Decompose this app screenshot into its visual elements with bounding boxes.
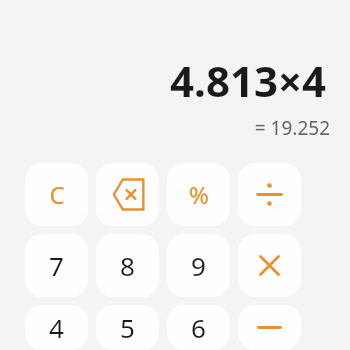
button[interactable]: 4 xyxy=(25,305,88,350)
staticText: = 19.252 xyxy=(0,115,330,141)
staticText: 5 xyxy=(120,310,135,345)
button[interactable]: Multiply xyxy=(238,234,301,297)
staticText: 4 xyxy=(49,310,64,345)
button[interactable]: 8 xyxy=(96,234,159,297)
button[interactable]: Backspace xyxy=(96,163,159,226)
staticText: 6 xyxy=(191,310,206,345)
button[interactable]: 9 xyxy=(167,234,230,297)
button[interactable]: % xyxy=(167,163,230,226)
button[interactable]: C xyxy=(25,163,88,226)
staticText: 4.813×4 xyxy=(0,52,326,109)
staticText: 7 xyxy=(49,248,64,283)
staticText: % xyxy=(189,178,209,211)
button[interactable]: 5 xyxy=(96,305,159,350)
button[interactable]: Divide xyxy=(238,163,301,226)
staticText: C xyxy=(49,178,65,211)
staticText: 8 xyxy=(120,248,135,283)
button[interactable]: Minus xyxy=(238,305,301,350)
button[interactable]: 7 xyxy=(25,234,88,297)
button[interactable]: 6 xyxy=(167,305,230,350)
staticText: 9 xyxy=(191,248,206,283)
